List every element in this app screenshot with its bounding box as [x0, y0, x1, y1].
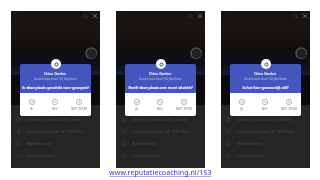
button[interactable]: Wat fantastisch	[11, 137, 100, 149]
button[interactable]: NEE	[148, 93, 172, 116]
button[interactable]: Oosterhoutsestraat 126, 7333 NS A…	[11, 125, 100, 137]
staticText: Geopend · Sluit om 22:00 · Chinees	[237, 117, 293, 122]
button[interactable]: Directions	[190, 47, 202, 59]
button[interactable]: Wat fantastisch	[116, 137, 205, 149]
staticText: NIET ZEKER	[71, 107, 88, 111]
staticText: Geopend · Sluit om 22:00 · Chinees	[132, 117, 188, 122]
staticText: NEE	[262, 107, 268, 111]
staticText: Oosterhoutsestraat 126, Apeldoorn	[139, 77, 183, 81]
button[interactable]: JA	[230, 93, 253, 116]
button[interactable]: NIET ZEKER	[67, 93, 91, 116]
staticText: Wat fantastisch	[237, 141, 262, 146]
button[interactable]: Close	[301, 12, 309, 20]
button[interactable]: JA	[20, 93, 43, 116]
button[interactable]: Oosterhoutsestraat 126, 7333 NS A…	[116, 125, 205, 137]
staticText: Voorstel invoeren	[132, 153, 160, 158]
button[interactable]: Directions	[295, 47, 307, 59]
staticText: NIET ZEKER	[281, 107, 298, 111]
staticText: Oosterhoutsestraat 126, Apeldoorn	[244, 77, 288, 81]
staticText: 100%	[88, 12, 97, 16]
button[interactable]: Oosterhoutsestraat 126, 7333 NS A…	[221, 125, 310, 137]
staticText: China Garden	[149, 71, 172, 76]
staticText: www.reputatiecoaching.nl/153	[109, 168, 212, 178]
staticText: China Garden	[254, 71, 277, 76]
staticText: 100%	[298, 12, 307, 16]
button[interactable]: NIET ZEKER	[277, 93, 301, 116]
button[interactable]: Geopend · Sluit om 22:00 · Chinees	[11, 113, 100, 125]
button[interactable]: JA	[125, 93, 148, 116]
staticText: China Garden	[44, 71, 67, 76]
staticText: Wat fantastisch	[132, 141, 157, 146]
button[interactable]: Wat fantastisch	[221, 137, 310, 149]
staticText: Oosterhoutsestraat 126, 7333 NS A…	[27, 129, 86, 134]
button[interactable]: Close	[196, 12, 204, 20]
staticText: NIET ZEKER	[176, 107, 193, 111]
staticText: Is het hier gewoonlijk stil?	[242, 85, 289, 90]
staticText: Is deze plaats geschikt voor groepen?	[22, 85, 89, 90]
staticText: Voorstel invoeren	[237, 153, 265, 158]
staticText: Heeft deze plaats een mooi uitzicht?	[128, 85, 193, 90]
staticText: 100%	[193, 12, 202, 16]
staticText: Geopend · Sluit om 22:00 · Chinees	[27, 117, 83, 122]
button[interactable]: Voorstel invoeren	[116, 149, 205, 161]
button[interactable]: NEE	[43, 93, 67, 116]
staticText: Wat fantastisch	[27, 141, 52, 146]
button[interactable]: Close	[91, 12, 99, 20]
staticText: JA	[240, 107, 243, 111]
button[interactable]: NEE	[253, 93, 277, 116]
staticText: Oosterhoutsestraat 126, 7333 NS A…	[237, 129, 296, 134]
button[interactable]: Voorstel invoeren	[11, 149, 100, 161]
button[interactable]: Voorstel invoeren	[221, 149, 310, 161]
button[interactable]: Geopend · Sluit om 22:00 · Chinees	[221, 113, 310, 125]
button[interactable]: Directions	[85, 47, 97, 59]
button[interactable]: Geopend · Sluit om 22:00 · Chinees	[116, 113, 205, 125]
staticText: JA	[30, 107, 33, 111]
button[interactable]: NIET ZEKER	[172, 93, 196, 116]
staticText: JA	[135, 107, 138, 111]
staticText: NEE	[157, 107, 163, 111]
staticText: Oosterhoutsestraat 126, 7333 NS A…	[132, 129, 191, 134]
staticText: NEE	[52, 107, 58, 111]
staticText: Voorstel invoeren	[27, 153, 55, 158]
staticText: Oosterhoutsestraat 126, Apeldoorn	[34, 77, 78, 81]
